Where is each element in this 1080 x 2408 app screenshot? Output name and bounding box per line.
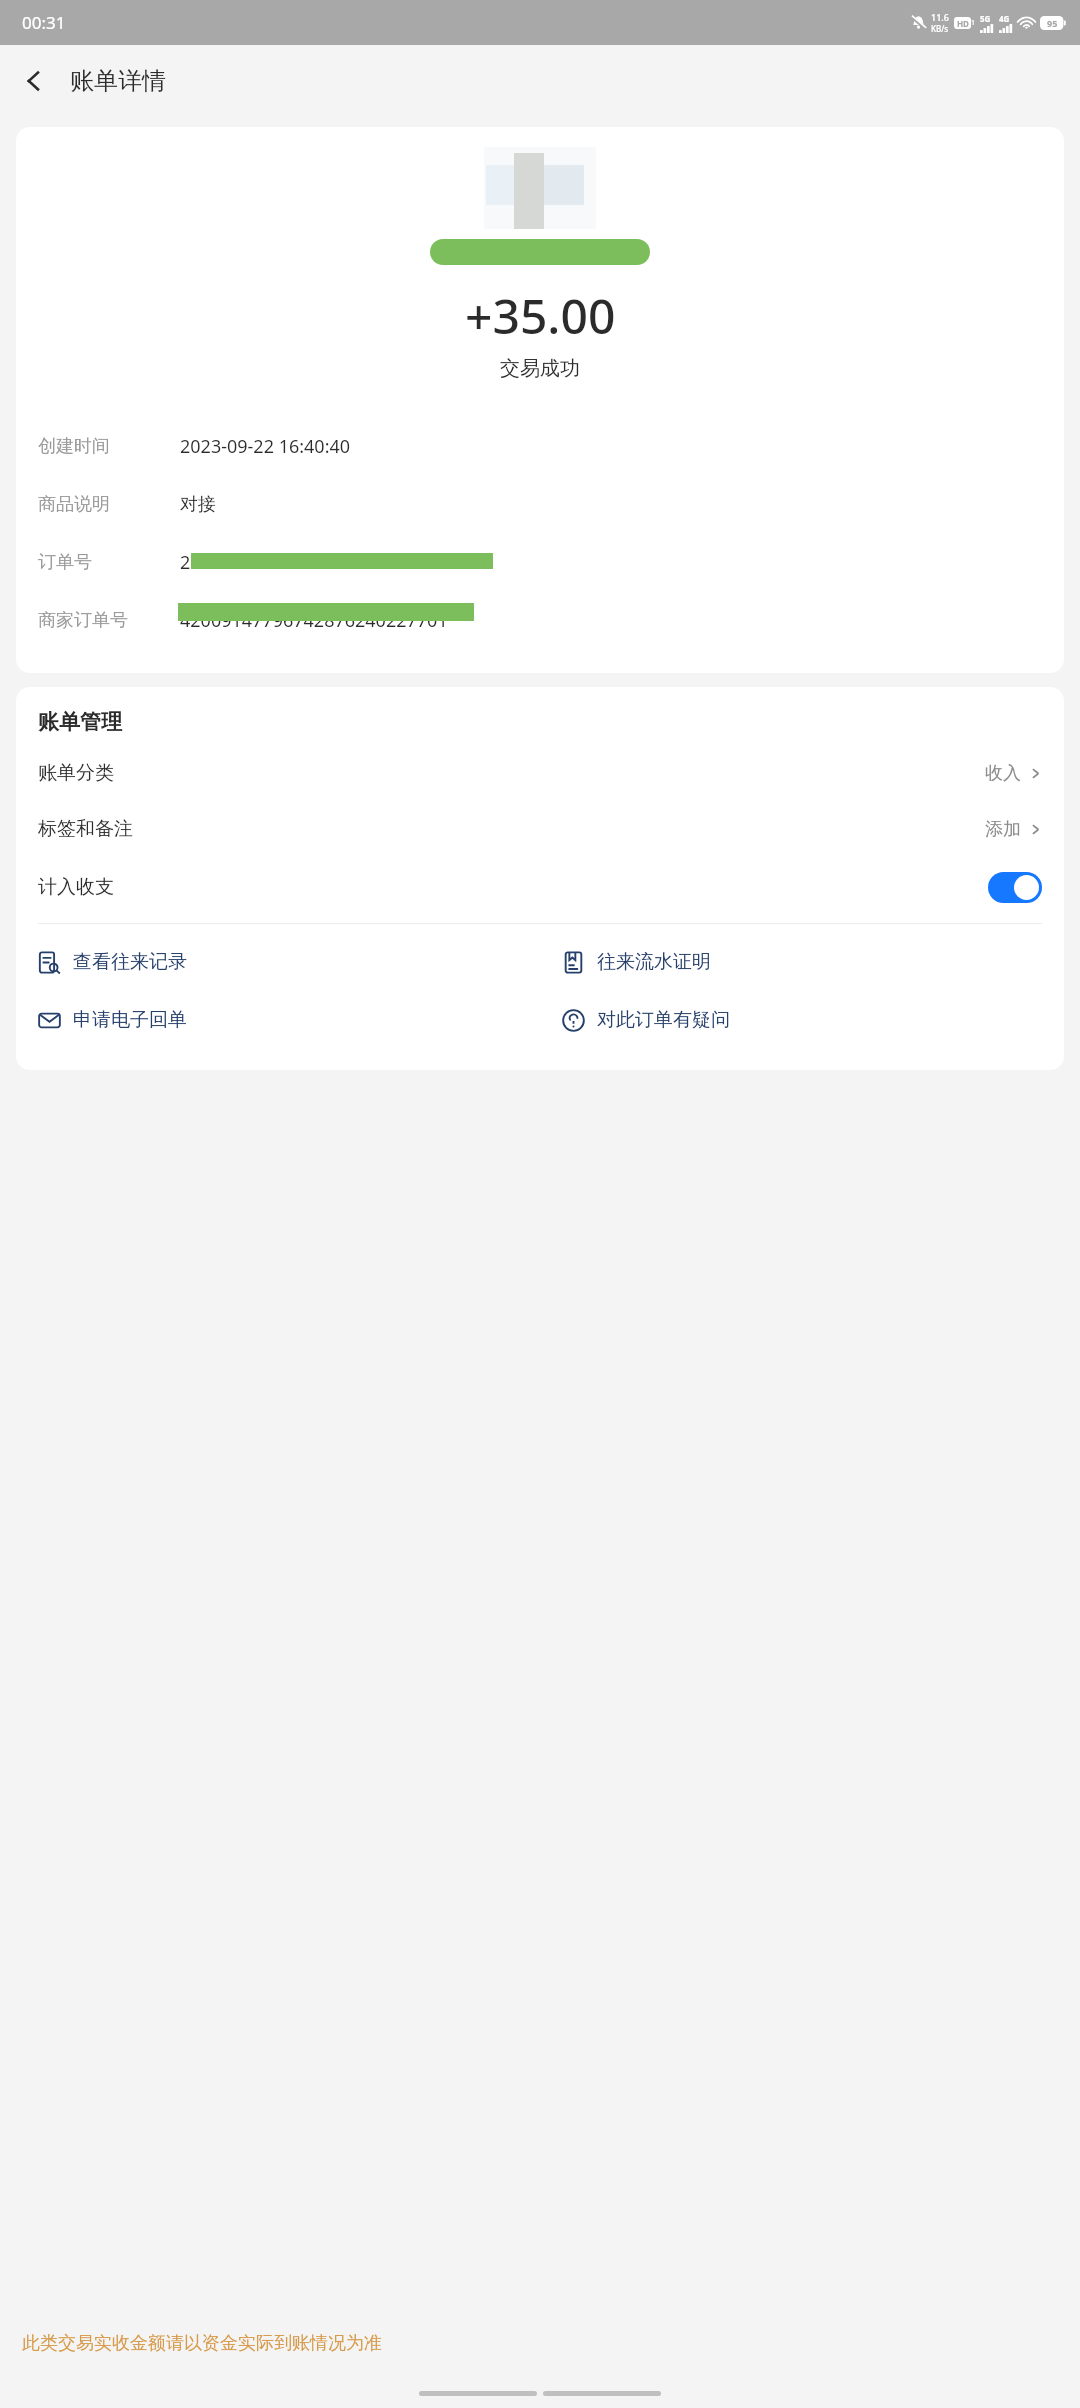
button[interactable]: 申请电子回单 xyxy=(16,996,540,1044)
staticText: 对接 xyxy=(180,493,216,516)
staticText: 商品说明 xyxy=(38,493,158,516)
button[interactable]: 计入收支 xyxy=(16,857,1064,917)
staticText: 2023092222200145785178964228 xyxy=(180,550,469,575)
button[interactable]: Back xyxy=(10,57,58,105)
staticText: 账单详情 xyxy=(70,66,166,96)
staticText: 计入收支 xyxy=(38,875,114,899)
staticText: 95 xyxy=(1047,17,1058,29)
staticText: 账单分类 xyxy=(38,761,114,785)
staticText: 商家订单号 xyxy=(38,609,158,632)
staticText: +35.00 xyxy=(465,283,616,348)
button[interactable]: 标签和备注 xyxy=(16,801,1064,857)
staticText: 创建时间 xyxy=(38,435,158,458)
button[interactable]: 对此订单有疑问 xyxy=(540,996,1064,1044)
staticText: 此类交易实收金额请以资金实际到账情况为准 xyxy=(22,2332,1058,2355)
staticText: 00:31 xyxy=(22,11,66,34)
staticText: 收入 xyxy=(985,762,1021,785)
staticText: 5G xyxy=(980,13,991,24)
staticText: 申请电子回单 xyxy=(73,1008,187,1032)
staticText: 42009147796742876240227701 xyxy=(180,608,448,633)
staticText: HD xyxy=(957,18,969,29)
staticText: 1 xyxy=(971,18,976,28)
staticText: 添加 xyxy=(985,818,1021,841)
staticText: 4G xyxy=(999,13,1010,24)
staticText: 2023-09-22 16:40:40 xyxy=(180,434,351,459)
staticText: 往来流水证明 xyxy=(597,950,711,974)
staticText: 交易成功 xyxy=(500,356,580,381)
staticText: 订单号 xyxy=(38,551,158,574)
staticText: KB/s xyxy=(931,23,949,34)
button[interactable]: 账单分类 xyxy=(16,745,1064,801)
button[interactable]: 查看往来记录 xyxy=(16,938,540,986)
staticText: 11.6 xyxy=(931,11,949,23)
staticText: 账单管理 xyxy=(38,709,122,735)
staticText: 标签和备注 xyxy=(38,817,133,841)
staticText: 对此订单有疑问 xyxy=(597,1008,730,1032)
button[interactable]: 往来流水证明 xyxy=(540,938,1064,986)
staticText: 查看往来记录 xyxy=(73,950,187,974)
